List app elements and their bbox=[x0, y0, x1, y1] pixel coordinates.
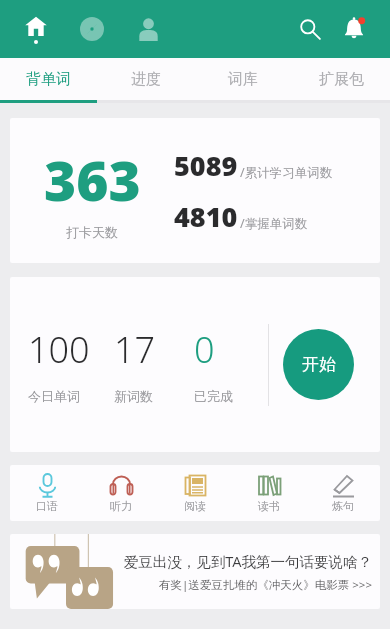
button[interactable]: Profile bbox=[126, 7, 170, 51]
staticText: 读书 bbox=[258, 499, 280, 513]
staticText: 363 bbox=[44, 142, 141, 217]
staticText: /累计学习单词数 bbox=[240, 164, 333, 181]
button[interactable]: 阅读 bbox=[158, 465, 232, 521]
button[interactable]: 扩展包 bbox=[292, 58, 390, 100]
staticText: 打卡天数 bbox=[66, 224, 118, 240]
button[interactable]: 炼句 bbox=[306, 465, 380, 521]
staticText: 炼句 bbox=[332, 499, 354, 513]
button[interactable]: 背单词 bbox=[0, 58, 97, 100]
staticText: 17 bbox=[114, 325, 156, 374]
staticText: 词库 bbox=[228, 70, 258, 89]
button[interactable]: Search bbox=[288, 7, 332, 51]
staticText: 4810 bbox=[174, 198, 238, 235]
staticText: 100 bbox=[28, 325, 90, 374]
staticText: 开始 bbox=[302, 354, 336, 375]
button[interactable]: 进度 bbox=[97, 58, 194, 100]
staticText: /掌握单词数 bbox=[240, 215, 308, 232]
button[interactable]: Notifications bbox=[332, 7, 376, 51]
button[interactable]: Home bbox=[14, 7, 58, 51]
staticText: 新词数 bbox=[114, 388, 153, 404]
staticText: 爱豆出没，见到TA我第一句话要说啥？ bbox=[123, 551, 372, 571]
staticText: 背单词 bbox=[26, 70, 71, 89]
staticText: 今日单词 bbox=[28, 388, 80, 404]
button[interactable]: 爱豆出没，见到TA我第一句话要说啥？ bbox=[10, 534, 380, 609]
staticText: 进度 bbox=[131, 70, 161, 89]
button[interactable]: 363 bbox=[10, 118, 380, 263]
staticText: 口语 bbox=[36, 499, 58, 513]
button[interactable]: 口语 bbox=[10, 465, 84, 521]
staticText: 5089 bbox=[174, 147, 238, 184]
staticText: 0 bbox=[194, 325, 215, 374]
button[interactable]: 听力 bbox=[84, 465, 158, 521]
button[interactable]: Discover bbox=[70, 7, 114, 51]
staticText: 扩展包 bbox=[319, 70, 364, 89]
button[interactable]: 读书 bbox=[232, 465, 306, 521]
staticText: 有奖|送爱豆扎堆的《冲天火》电影票 >>> bbox=[158, 577, 372, 593]
button[interactable]: 开始 bbox=[283, 329, 354, 400]
staticText: 阅读 bbox=[184, 499, 206, 513]
staticText: 已完成 bbox=[194, 388, 233, 404]
button[interactable]: 词库 bbox=[194, 58, 292, 100]
staticText: 听力 bbox=[110, 499, 132, 513]
